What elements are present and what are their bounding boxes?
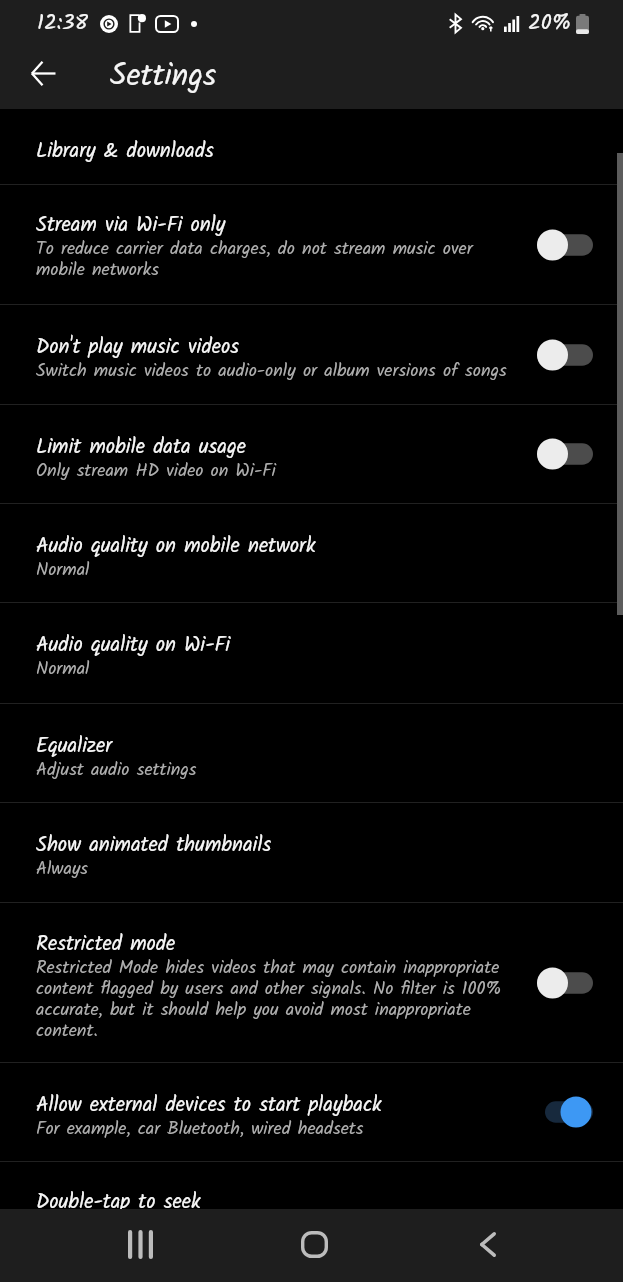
button[interactable]: Toggle off	[534, 337, 596, 373]
button[interactable]: Back	[19, 49, 67, 97]
button[interactable]: Stream via Wi-Fi only	[0, 185, 623, 304]
staticText: Audio quality on mobile network	[36, 530, 576, 563]
staticText: Switch music videos to audio-only or alb…	[36, 357, 536, 386]
staticText: For example, car Bluetooth, wired headse…	[36, 1115, 536, 1144]
staticText: Restricted mode	[36, 928, 536, 961]
staticText: 20%	[528, 6, 572, 41]
staticText: Normal	[36, 556, 576, 585]
staticText: To reduce carrier data charges, do not s…	[36, 235, 536, 285]
staticText: Don't play music videos	[36, 331, 536, 364]
staticText: Double-tap to seek	[36, 1186, 576, 1209]
staticText: Restricted Mode hides videos that may co…	[36, 954, 536, 1046]
staticText: Show animated thumbnails	[36, 829, 576, 862]
button[interactable]: Restricted mode	[0, 903, 623, 1062]
button[interactable]: Audio quality on mobile network	[0, 504, 623, 602]
button[interactable]: Equalizer	[0, 704, 623, 802]
staticText: Audio quality on Wi-Fi	[36, 629, 576, 662]
staticText: 12:38	[37, 6, 88, 41]
staticText: Allow external devices to start playback	[36, 1089, 536, 1122]
staticText: Normal	[36, 655, 576, 684]
button[interactable]: Recent apps	[88, 1209, 192, 1282]
staticText: Equalizer	[36, 730, 576, 763]
button[interactable]: Home	[262, 1209, 367, 1282]
button[interactable]: Audio quality on Wi-Fi	[0, 603, 623, 703]
button[interactable]: Toggle on	[534, 1094, 596, 1130]
staticText: Settings	[110, 52, 217, 101]
button[interactable]: Allow external devices to start playback	[0, 1063, 623, 1161]
staticText: Always	[36, 855, 576, 884]
staticText: Adjust audio settings	[36, 756, 576, 785]
staticText: Stream via Wi-Fi only	[36, 209, 536, 242]
button[interactable]: Double-tap to seek	[0, 1162, 623, 1209]
button[interactable]: Show animated thumbnails	[0, 803, 623, 902]
staticText: Limit mobile data usage	[36, 431, 536, 464]
button[interactable]: Limit mobile data usage	[0, 405, 623, 503]
button[interactable]: Back	[436, 1209, 540, 1282]
button[interactable]: Toggle off	[534, 436, 596, 472]
staticText: Library & downloads	[36, 135, 214, 168]
button[interactable]: Toggle off	[534, 965, 596, 1001]
button[interactable]: Don't play music videos	[0, 305, 623, 404]
button[interactable]: Toggle off	[534, 227, 596, 263]
staticText: Only stream HD video on Wi-Fi	[36, 457, 536, 486]
